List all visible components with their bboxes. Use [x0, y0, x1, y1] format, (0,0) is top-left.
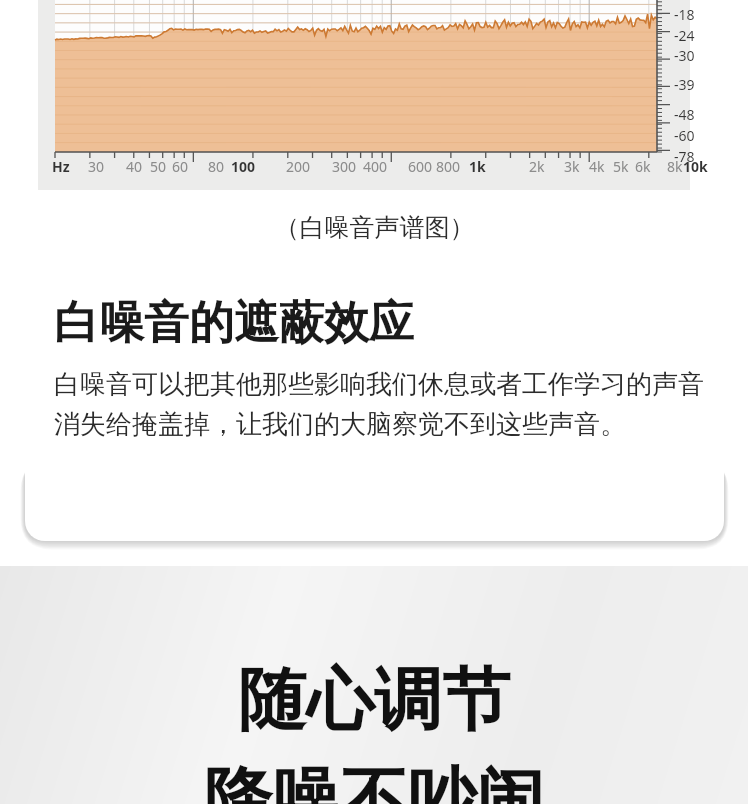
- staticText: 1k: [469, 157, 486, 176]
- staticText: 600: [408, 157, 433, 176]
- staticText: 随心调节: [238, 658, 510, 744]
- staticText: （白噪音声谱图）: [25, 212, 724, 243]
- staticText: 5k: [613, 157, 629, 176]
- staticText: 3k: [564, 157, 580, 176]
- staticText: -39: [674, 75, 695, 94]
- staticText: 100: [231, 157, 256, 176]
- staticText: -18: [674, 5, 695, 24]
- staticText: -30: [674, 46, 695, 65]
- staticText: 白噪音的遮蔽效应: [54, 295, 414, 352]
- button[interactable]: 白噪音声谱图: [25, 0, 724, 541]
- staticText: 4k: [589, 157, 605, 176]
- button[interactable]: 随心调节: [0, 566, 748, 804]
- staticText: 80: [208, 157, 225, 176]
- staticText: 800: [436, 157, 461, 176]
- staticText: 2k: [529, 157, 545, 176]
- other: 白噪音声谱图: [38, 0, 690, 190]
- staticText: 降噪不吵闹: [204, 758, 544, 804]
- staticText: -78: [674, 147, 695, 166]
- staticText: -48: [674, 105, 695, 124]
- staticText: -60: [674, 126, 695, 145]
- staticText: 50: [150, 157, 167, 176]
- staticText: 60: [172, 157, 189, 176]
- staticText: 30: [88, 157, 105, 176]
- staticText: Hz: [52, 157, 70, 176]
- staticText: 8k: [667, 157, 683, 176]
- staticText: 白噪音可以把其他那些影响我们休息或者工作学习的声音消失给掩盖掉，让我们的大脑察觉…: [54, 368, 706, 441]
- staticText: 300: [332, 157, 357, 176]
- staticText: 400: [363, 157, 388, 176]
- staticText: 40: [126, 157, 143, 176]
- staticText: 200: [286, 157, 311, 176]
- staticText: 6k: [635, 157, 651, 176]
- staticText: -24: [674, 26, 695, 45]
- staticText: 10k: [683, 157, 708, 176]
